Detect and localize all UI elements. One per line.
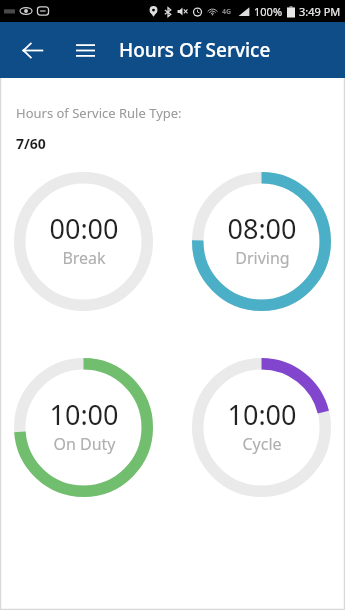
button[interactable]: Menu xyxy=(65,30,105,70)
staticText: 10:00 xyxy=(227,396,297,433)
button[interactable]: 00:00 xyxy=(14,172,153,311)
staticText: Cycle xyxy=(242,433,282,455)
button[interactable]: Back xyxy=(12,30,52,70)
button[interactable]: 10:00 xyxy=(14,358,153,497)
staticText: Hours of Service Rule Type: xyxy=(16,104,182,122)
staticText: Break xyxy=(62,247,106,269)
staticText: 00:00 xyxy=(49,210,119,247)
staticText: Driving xyxy=(235,247,290,269)
staticText: 7/60 xyxy=(16,134,46,153)
staticText: 100% xyxy=(254,4,283,19)
staticText: Hours Of Service xyxy=(119,37,271,63)
staticText: On Duty xyxy=(53,433,116,455)
button[interactable]: 08:00 xyxy=(192,172,331,311)
staticText: 10:00 xyxy=(49,396,119,433)
staticText: 4G xyxy=(222,7,232,16)
staticText: 08:00 xyxy=(227,210,297,247)
staticText: 3:49 PM xyxy=(299,4,341,19)
button[interactable]: 10:00 xyxy=(192,358,331,497)
